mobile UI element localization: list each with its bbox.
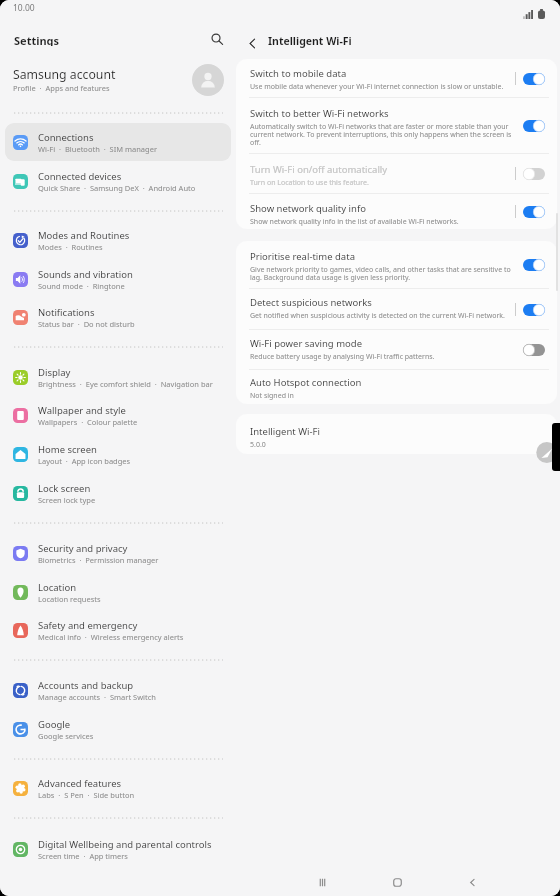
button[interactable]: Advanced features bbox=[5, 769, 231, 807]
staticText: Turn Wi-Fi on/off automatically bbox=[250, 163, 388, 176]
staticText: Digital Wellbeing and parental controls bbox=[38, 838, 212, 851]
staticText: Switch to better Wi-Fi networks bbox=[250, 107, 389, 120]
staticText: Intelligent Wi-Fi bbox=[268, 34, 352, 48]
button[interactable]: Safety and emergency bbox=[5, 611, 231, 649]
button[interactable]: Samsung account bbox=[0, 46, 236, 102]
button[interactable]: Sounds and vibration bbox=[5, 260, 231, 298]
staticText: Connections bbox=[38, 131, 94, 144]
staticText: Wi-Fi power saving mode bbox=[250, 337, 362, 350]
staticText: Sounds and vibration bbox=[38, 268, 133, 281]
staticText: Profile · Apps and features bbox=[13, 83, 110, 93]
button[interactable]: Connections bbox=[5, 123, 231, 161]
staticText: 10.00 bbox=[13, 2, 35, 14]
staticText: Wi-Fi · Bluetooth · SIM manager bbox=[38, 144, 157, 154]
button[interactable]: Navigation handle bbox=[536, 442, 557, 463]
staticText: Sound mode · Ringtone bbox=[38, 281, 125, 291]
button[interactable]: Detect suspicious networks bbox=[236, 289, 557, 329]
staticText: Manage accounts · Smart Switch bbox=[38, 692, 156, 702]
button[interactable]: Lock screen bbox=[5, 474, 231, 512]
button[interactable]: Intelligent Wi-Fi bbox=[236, 414, 557, 454]
staticText: Use mobile data whenever your Wi-Fi inte… bbox=[250, 82, 504, 92]
staticText: Connected devices bbox=[38, 170, 122, 183]
staticText: Security and privacy bbox=[38, 542, 128, 555]
staticText: Layout · App icon badges bbox=[38, 456, 131, 466]
button[interactable]: Back bbox=[459, 869, 485, 895]
staticText: Show network quality info bbox=[250, 202, 366, 215]
staticText: Google bbox=[38, 718, 71, 731]
button[interactable]: Home screen bbox=[5, 435, 231, 473]
button[interactable]: Wi-Fi power saving mode bbox=[236, 330, 557, 369]
button[interactable]: Navigate up bbox=[240, 31, 265, 56]
button[interactable]: Accounts and backup bbox=[5, 671, 231, 709]
staticText: Not signed in bbox=[250, 391, 294, 401]
button[interactable]: Notifications bbox=[5, 298, 231, 336]
button[interactable]: Google bbox=[5, 710, 231, 748]
button[interactable]: Auto Hotspot connection bbox=[236, 370, 557, 404]
button[interactable]: Modes and Routines bbox=[5, 221, 231, 259]
staticText: Samsung account bbox=[13, 66, 116, 83]
button[interactable]: Location bbox=[5, 573, 231, 611]
staticText: Safety and emergency bbox=[38, 619, 138, 632]
button[interactable]: Recent apps bbox=[309, 869, 335, 895]
button[interactable]: Connected devices bbox=[5, 162, 231, 200]
button[interactable]: Prioritise real-time data bbox=[236, 241, 557, 288]
button[interactable]: Switch to mobile data bbox=[236, 59, 557, 97]
staticText: Wallpapers · Colour palette bbox=[38, 417, 138, 427]
button[interactable]: Digital Wellbeing and parental controls bbox=[5, 830, 231, 868]
button[interactable]: Show network quality info bbox=[236, 194, 557, 229]
staticText: Location requests bbox=[38, 594, 101, 604]
button[interactable]: Switch to better Wi-Fi networks bbox=[236, 98, 557, 153]
staticText: Lock screen bbox=[38, 482, 91, 495]
staticText: Wallpaper and style bbox=[38, 404, 126, 417]
button[interactable]: Edge panel handle bbox=[552, 423, 560, 471]
button[interactable]: Security and privacy bbox=[5, 534, 231, 572]
staticText: Location bbox=[38, 581, 77, 594]
button[interactable]: Home bbox=[384, 869, 410, 895]
staticText: Intelligent Wi-Fi bbox=[250, 425, 320, 438]
staticText: Prioritise real-time data bbox=[250, 250, 355, 263]
staticText: Modes · Routines bbox=[38, 242, 103, 252]
button[interactable]: Turn Wi-Fi on/off automatically bbox=[236, 154, 557, 193]
staticText: Turn on Location to use this feature. bbox=[250, 178, 369, 188]
staticText: Screen lock type bbox=[38, 495, 96, 505]
staticText: Settings bbox=[14, 33, 60, 46]
staticText: Status bar · Do not disturb bbox=[38, 319, 135, 329]
staticText: Modes and Routines bbox=[38, 229, 130, 242]
staticText: Detect suspicious networks bbox=[250, 296, 372, 309]
staticText: Medical info · Wireless emergency alerts bbox=[38, 632, 184, 642]
staticText: Home screen bbox=[38, 443, 97, 456]
button[interactable]: Wallpaper and style bbox=[5, 396, 231, 434]
staticText: Google services bbox=[38, 731, 94, 741]
staticText: Switch to mobile data bbox=[250, 67, 347, 80]
staticText: Get notified when suspicious activity is… bbox=[250, 311, 505, 321]
staticText: Advanced features bbox=[38, 777, 122, 790]
staticText: Labs · S Pen · Side button bbox=[38, 790, 135, 800]
button[interactable]: Display bbox=[5, 358, 231, 396]
staticText: Quick Share · Samsung DeX · Android Auto bbox=[38, 183, 196, 193]
staticText: Notifications bbox=[38, 306, 95, 319]
staticText: Accounts and backup bbox=[38, 679, 134, 692]
staticText: Give network priority to games, video ca… bbox=[250, 265, 512, 282]
staticText: Automatically switch to Wi-Fi networks t… bbox=[250, 122, 512, 147]
staticText: Biometrics · Permission manager bbox=[38, 555, 159, 565]
staticText: Auto Hotspot connection bbox=[250, 376, 362, 389]
staticText: 5.0.0 bbox=[250, 440, 266, 450]
button[interactable]: Search bbox=[203, 31, 231, 46]
staticText: Screen time · App timers bbox=[38, 851, 128, 861]
staticText: Reduce battery usage by analysing Wi-Fi … bbox=[250, 352, 435, 362]
staticText: Display bbox=[38, 366, 71, 379]
staticText: Brightness · Eye comfort shield · Naviga… bbox=[38, 379, 213, 389]
staticText: Show network quality info in the list of… bbox=[250, 217, 459, 227]
